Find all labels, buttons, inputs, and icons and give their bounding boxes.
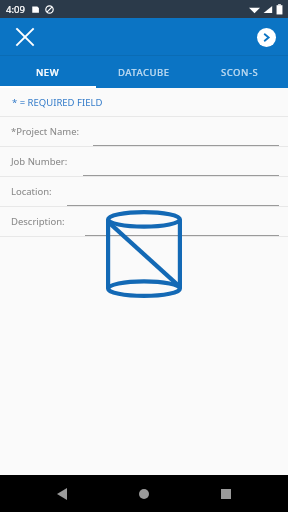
staticText: SCON-S xyxy=(221,66,259,79)
staticText: DATACUBE xyxy=(118,66,170,79)
staticText: *Project Name: xyxy=(11,125,89,138)
button[interactable]: SCON-S xyxy=(192,56,288,88)
button[interactable]: Next xyxy=(252,23,280,51)
button[interactable]: Location: xyxy=(0,177,288,206)
staticText: * = REQUIRED FIELD xyxy=(12,96,103,109)
staticText: Job Number: xyxy=(11,155,79,168)
button[interactable]: Close xyxy=(10,22,40,52)
staticText: 4:09 xyxy=(6,3,25,16)
button[interactable]: NEW xyxy=(0,56,96,88)
staticText: Description: xyxy=(11,215,81,228)
button[interactable]: Back xyxy=(42,475,82,512)
button[interactable]: Job Number: xyxy=(0,147,288,176)
button[interactable]: Home xyxy=(124,475,164,512)
staticText: Location: xyxy=(11,185,63,198)
button[interactable]: *Project Name: xyxy=(0,117,288,146)
button[interactable]: Recents xyxy=(206,475,246,512)
staticText: NEW xyxy=(36,66,60,79)
button[interactable]: Description: xyxy=(0,207,288,236)
button[interactable]: DATACUBE xyxy=(96,56,192,88)
